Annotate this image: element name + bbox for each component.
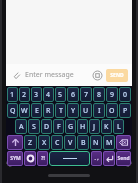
button[interactable]: 6 [67,87,79,102]
button[interactable]: W [19,103,30,118]
button[interactable]: Backspace [116,135,131,150]
staticText: V [68,138,73,148]
button[interactable]: 4 [43,87,54,102]
staticText: Enter message [25,70,74,80]
button[interactable]: Send [116,151,131,166]
button[interactable]: K [101,119,112,134]
button[interactable]: SYM [7,151,23,166]
staticText: SYM [10,155,21,162]
staticText: G [68,122,74,132]
staticText: K [104,122,109,132]
button[interactable]: R [43,103,54,118]
staticText: S [32,122,36,132]
staticText: 8 [97,90,102,100]
button[interactable]: SEND [106,69,128,82]
button[interactable]: ?! [37,151,48,166]
button[interactable]: S [28,119,40,134]
staticText: O [109,106,115,116]
button[interactable]: Shift [7,135,23,150]
button[interactable]: Enter [103,151,115,166]
button[interactable]: A [15,119,27,134]
button[interactable]: 7 [80,87,92,102]
staticText: F [57,122,61,132]
button[interactable]: O [106,103,118,118]
staticText: L [117,122,121,132]
staticText: 2 [22,90,27,100]
button[interactable]: H [77,119,88,134]
staticText: H [80,122,86,132]
staticText: Y [71,106,76,116]
button[interactable]: . , [91,151,102,166]
staticText: 4 [46,90,51,100]
button[interactable]: Q [7,103,18,118]
button[interactable]: 2 [19,87,30,102]
staticText: . , [94,155,99,162]
button[interactable]: Space [49,151,90,166]
staticText: 3 [34,90,39,100]
staticText: M [106,138,113,148]
button[interactable]: C [51,135,63,150]
button[interactable]: Attach [10,69,22,81]
staticText: I [98,106,101,116]
button[interactable]: L [113,119,124,134]
staticText: 7 [84,90,89,100]
staticText: N [93,138,99,148]
button[interactable]: M [103,135,115,150]
button[interactable]: P [119,103,131,118]
button[interactable]: F [53,119,64,134]
staticText: X [42,138,47,148]
button[interactable]: 0 [119,87,131,102]
button[interactable]: J [89,119,100,134]
button[interactable]: 1 [7,87,18,102]
staticText: J [93,122,96,132]
button[interactable]: U [80,103,92,118]
button[interactable]: Y [67,103,79,118]
staticText: Q [10,106,16,116]
staticText: Send [117,155,130,162]
staticText: U [83,106,89,116]
staticText: ?! [41,155,45,162]
button[interactable]: 9 [106,87,118,102]
button[interactable]: Emoji [91,69,104,82]
button[interactable]: G [65,119,76,134]
staticText: C [55,138,60,148]
button[interactable]: I [93,103,105,118]
staticText: E [35,106,39,116]
button[interactable]: Settings [24,151,36,166]
staticText: P [123,106,128,116]
staticText: B [81,138,86,148]
staticText: 0 [123,90,128,100]
button[interactable]: N [90,135,102,150]
staticText: W [21,106,28,116]
staticText: SEND [110,72,124,79]
staticText: 6 [71,90,76,100]
staticText: R [46,106,51,116]
staticText: 1 [10,90,15,100]
button[interactable]: 5 [55,87,66,102]
staticText: 5 [58,90,63,100]
button[interactable]: B [77,135,89,150]
button[interactable]: T [55,103,66,118]
staticText: 9 [110,90,115,100]
button[interactable]: V [64,135,76,150]
button[interactable]: D [41,119,52,134]
button[interactable]: E [31,103,42,118]
staticText: D [44,122,50,132]
button[interactable]: X [38,135,50,150]
button[interactable]: 3 [31,87,42,102]
staticText: T [59,106,63,116]
button[interactable]: Z [24,135,37,150]
staticText: Z [28,138,33,148]
staticText: A [19,122,24,132]
button[interactable]: 8 [93,87,105,102]
